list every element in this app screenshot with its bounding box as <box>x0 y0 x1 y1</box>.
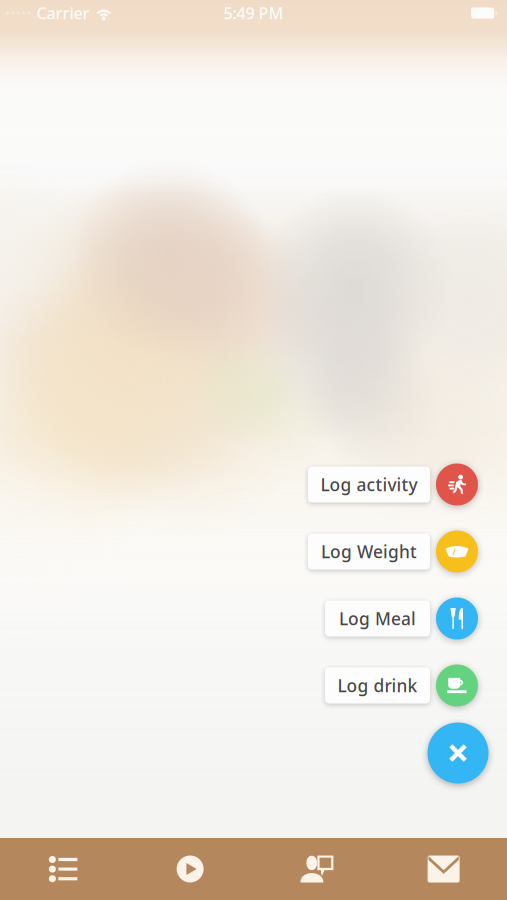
button[interactable]: Log activity <box>436 463 478 505</box>
button[interactable]: Log activity <box>308 466 430 502</box>
staticText: Log Weight <box>321 540 417 563</box>
button[interactable]: Log drink <box>325 667 430 703</box>
staticText: Carrier <box>36 2 89 24</box>
button[interactable]: Messages <box>380 855 507 882</box>
staticText: 5:49 PM <box>223 2 283 24</box>
button[interactable]: Log drink <box>436 664 478 706</box>
button[interactable]: Log Weight <box>308 533 430 569</box>
staticText: Log activity <box>320 473 417 496</box>
button[interactable]: Log Weight <box>436 530 478 572</box>
button[interactable]: Coach <box>253 855 380 882</box>
button[interactable]: Log Meal <box>325 600 430 636</box>
button[interactable]: Log <box>0 856 127 882</box>
staticText: Log drink <box>337 674 417 697</box>
button[interactable]: Log Meal <box>436 597 478 639</box>
button[interactable]: Close menu <box>427 722 488 783</box>
button[interactable]: Play <box>127 855 254 882</box>
staticText: Log Meal <box>339 607 416 630</box>
